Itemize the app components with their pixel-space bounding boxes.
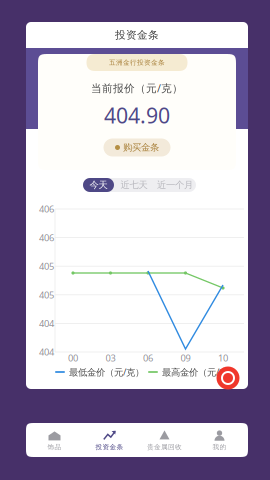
staticText: 近七天	[120, 179, 147, 191]
staticText: 406	[39, 203, 54, 215]
staticText: 404	[39, 317, 54, 330]
staticText: 03	[105, 352, 115, 364]
button[interactable]: 投资金条	[82, 423, 137, 457]
staticText: 406	[39, 231, 54, 244]
staticText: 最高金价（元/克）	[162, 366, 237, 378]
staticText: 09	[180, 352, 190, 364]
staticText: 我的	[212, 443, 226, 451]
staticText: 404.90	[104, 101, 170, 129]
button[interactable]: 购买金条	[103, 138, 170, 156]
staticText: 最低金价（元/克）	[69, 366, 144, 378]
staticText: 405	[39, 289, 54, 301]
staticText: 405	[39, 260, 54, 272]
button[interactable]: 贵金属回收	[137, 423, 192, 457]
button[interactable]: 饰品	[27, 423, 82, 457]
button[interactable]: 投资金条	[26, 22, 248, 48]
staticText: 00	[68, 352, 78, 364]
staticText: 当前报价（元/克）	[91, 81, 183, 95]
staticText: 今天	[89, 179, 107, 191]
staticText: 10	[218, 352, 228, 364]
button[interactable]: 近七天	[114, 178, 154, 192]
button[interactable]: 今天	[83, 178, 114, 192]
staticText: 404	[39, 346, 54, 358]
button[interactable]: 我的	[192, 423, 247, 457]
staticText: 投资金条	[95, 443, 123, 451]
staticText: 贵金属回收	[147, 443, 182, 451]
staticText: 饰品	[47, 443, 61, 451]
button[interactable]: 近一个月	[154, 178, 196, 192]
button[interactable]: Chat	[216, 366, 240, 390]
staticText: 06	[143, 352, 153, 364]
staticText: 近一个月	[157, 179, 193, 191]
staticText: 五洲金行投资金条	[109, 58, 165, 67]
staticText: 投资金条	[115, 28, 159, 41]
staticText: 购买金条	[123, 142, 159, 153]
